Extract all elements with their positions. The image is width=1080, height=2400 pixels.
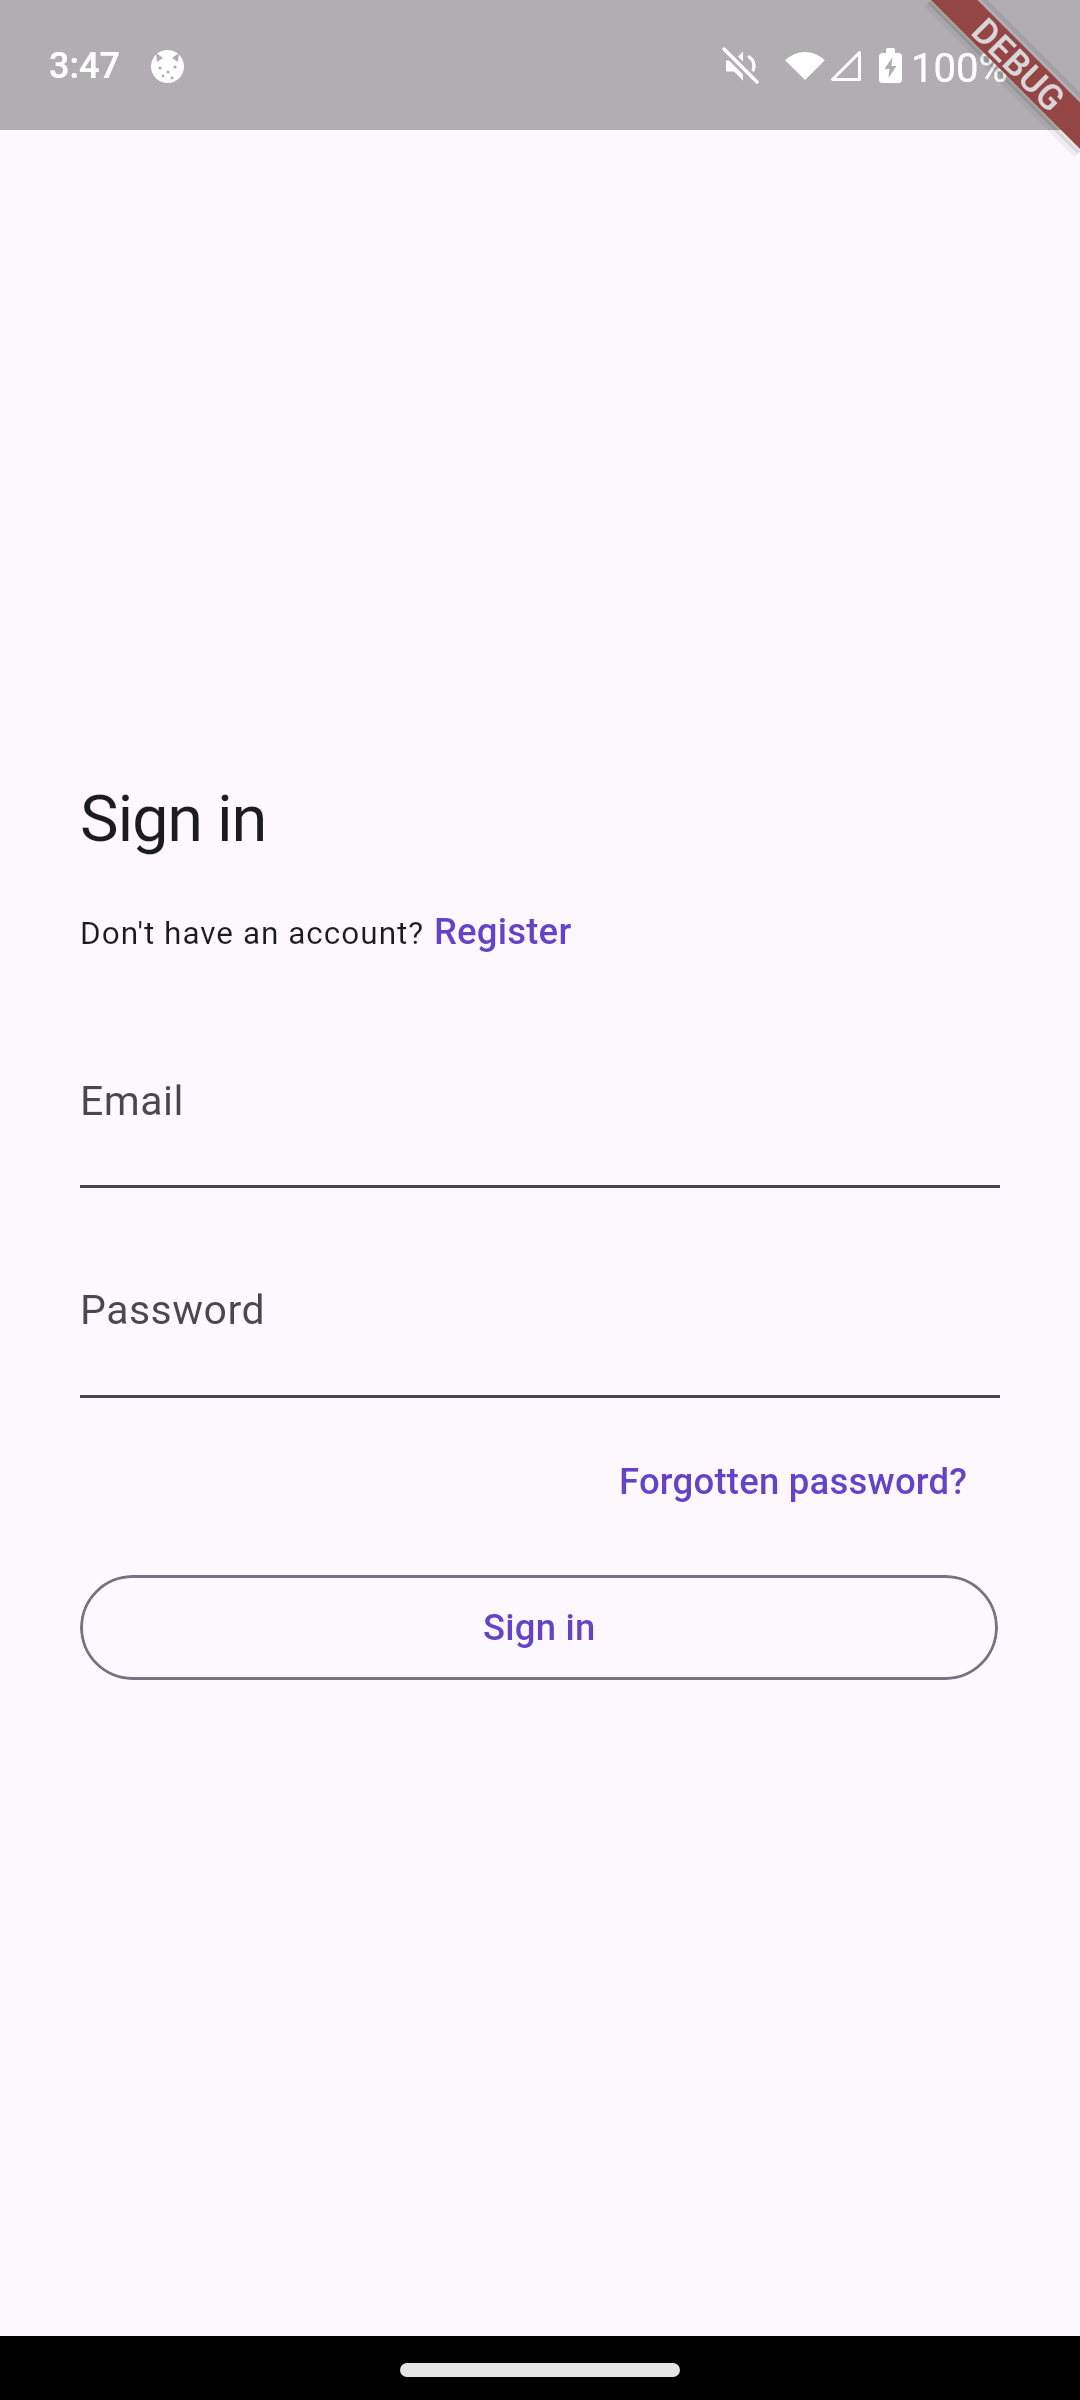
staticText: Email (80, 1077, 184, 1125)
staticText: Sign in (483, 1606, 596, 1649)
staticText: DEBUG (963, 11, 1073, 120)
button[interactable]: Register (434, 910, 572, 953)
button[interactable]: Forgotten password? (619, 1460, 968, 1503)
button[interactable] (400, 2363, 680, 2377)
staticText: Sign in (80, 781, 267, 857)
button[interactable]: Email (80, 1040, 1000, 1187)
staticText: Password (80, 1286, 266, 1334)
button[interactable]: Sign in (80, 1575, 998, 1680)
staticText: 3:47 (49, 45, 120, 87)
staticText: Don't have an account? (80, 915, 434, 952)
staticText: 100% (911, 45, 1008, 92)
button[interactable]: Password (80, 1250, 1000, 1397)
